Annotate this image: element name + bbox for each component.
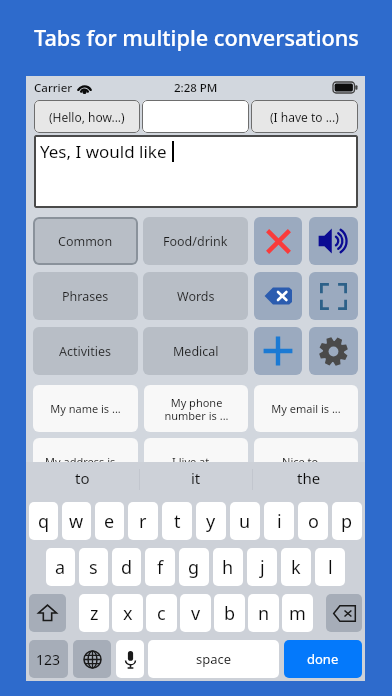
button[interactable]: t [162, 502, 192, 540]
staticText: b [224, 601, 236, 626]
button[interactable]: a [46, 548, 75, 586]
staticText: f [157, 555, 164, 580]
button[interactable]: globe [73, 640, 111, 678]
staticText: d [121, 555, 133, 580]
button[interactable]: 123 [29, 640, 68, 678]
button[interactable]: Medical [143, 327, 248, 375]
staticText: Nice to ... [282, 454, 330, 469]
button[interactable]: to [26, 462, 139, 496]
button[interactable]: h [213, 548, 243, 586]
staticText: Food/drink [163, 233, 228, 250]
staticText: c [157, 601, 166, 626]
staticText: Common [58, 233, 113, 250]
button[interactable]: m [282, 594, 313, 632]
button[interactable]: j [247, 548, 277, 586]
button[interactable]: My address is ... [33, 438, 138, 485]
button[interactable]: Nice to ... [254, 438, 358, 485]
staticText: e [104, 509, 115, 534]
staticText: space [196, 650, 232, 668]
button[interactable]: g [179, 548, 209, 586]
button[interactable]: My phone number is ... [144, 385, 248, 432]
staticText: I live at ... [172, 454, 221, 469]
staticText: p [341, 509, 353, 534]
staticText: g [188, 555, 200, 580]
button[interactable] [142, 100, 249, 133]
button[interactable]: e [95, 502, 124, 540]
button[interactable]: My email is ... [254, 385, 358, 432]
button[interactable]: f [145, 548, 175, 586]
staticText: x [123, 601, 133, 626]
button[interactable]: Fullscreen [309, 272, 358, 320]
button[interactable]: s [79, 548, 108, 586]
button[interactable]: My name is ... [33, 385, 138, 432]
staticText: u [239, 509, 251, 534]
staticText: Words [177, 288, 215, 305]
staticText: Yes, I would like [40, 140, 167, 163]
button[interactable]: o [298, 502, 328, 540]
staticText: Medical [173, 343, 219, 360]
button[interactable]: I live at ... [144, 438, 248, 485]
button[interactable]: n [248, 594, 279, 632]
staticText: y [206, 509, 216, 534]
staticText: m [289, 601, 306, 626]
button[interactable]: c [146, 594, 177, 632]
button[interactable]: Common [33, 217, 138, 265]
button[interactable]: p [332, 502, 362, 540]
staticText: l [328, 555, 333, 580]
staticText: j [260, 555, 265, 580]
button[interactable]: i [264, 502, 294, 540]
staticText: h [222, 555, 234, 580]
button[interactable]: mic [116, 640, 144, 678]
button[interactable]: Phrases [33, 272, 138, 320]
button[interactable]: Activities [33, 327, 138, 375]
staticText: done [307, 650, 339, 668]
button[interactable]: x [112, 594, 143, 632]
button[interactable]: q [29, 502, 58, 540]
button[interactable]: v [180, 594, 211, 632]
button[interactable]: it [140, 462, 252, 496]
button[interactable]: Settings [309, 327, 358, 375]
button[interactable]: Clear [254, 217, 302, 265]
button[interactable]: (I have to ...) [251, 100, 358, 133]
button[interactable]: z [79, 594, 109, 632]
staticText: (Hello, how...) [49, 109, 125, 125]
staticText: w [69, 509, 84, 534]
staticText: 2:28 PM [174, 80, 218, 96]
staticText: the [297, 468, 321, 488]
button[interactable]: done [284, 640, 362, 678]
button[interactable]: Backspace [254, 272, 302, 320]
staticText: v [191, 601, 201, 626]
button[interactable]: backspace [326, 594, 362, 632]
staticText: My phone number is ... [164, 395, 229, 423]
staticText: t [174, 509, 181, 534]
button[interactable]: (Hello, how...) [34, 100, 140, 133]
staticText: it [191, 468, 201, 488]
button[interactable]: Add [254, 327, 302, 375]
button[interactable]: k [281, 548, 311, 586]
button[interactable]: Yes, I would like [34, 135, 358, 208]
button[interactable]: u [230, 502, 260, 540]
button[interactable]: space [148, 640, 279, 678]
button[interactable]: y [196, 502, 226, 540]
staticText: Carrier [34, 80, 73, 96]
button[interactable]: the [253, 462, 365, 496]
button[interactable]: w [62, 502, 91, 540]
button[interactable]: Food/drink [143, 217, 248, 265]
staticText: i [277, 509, 282, 534]
staticText: 123 [36, 650, 61, 669]
staticText: Activities [59, 343, 112, 360]
staticText: s [89, 555, 98, 580]
button[interactable]: shift [29, 594, 66, 632]
button[interactable]: r [128, 502, 158, 540]
button[interactable]: Speak [309, 217, 358, 265]
button[interactable]: l [315, 548, 345, 586]
button[interactable]: b [214, 594, 245, 632]
button[interactable]: Words [143, 272, 248, 320]
staticText: o [308, 509, 319, 534]
staticText: My address is ... [45, 454, 127, 469]
staticText: a [55, 555, 66, 580]
staticText: r [139, 509, 147, 534]
staticText: k [291, 555, 301, 580]
button[interactable]: d [112, 548, 141, 586]
staticText: to [75, 468, 90, 488]
